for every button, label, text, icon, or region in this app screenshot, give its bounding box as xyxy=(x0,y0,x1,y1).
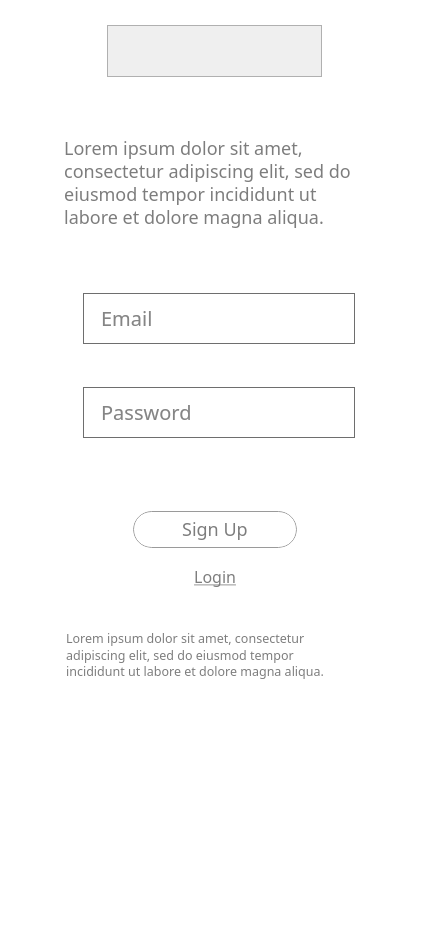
staticText: Sign Up xyxy=(182,517,248,542)
button[interactable]: Login xyxy=(190,562,240,592)
staticText: Email xyxy=(101,305,153,332)
staticText: Login xyxy=(194,566,236,588)
button[interactable]: Email xyxy=(83,293,355,344)
staticText: Lorem ipsum dolor sit amet, consectetur … xyxy=(64,136,359,229)
button[interactable]: Sign Up xyxy=(133,511,297,548)
staticText: Lorem ipsum dolor sit amet, consectetur … xyxy=(66,630,341,679)
button[interactable]: Password xyxy=(83,387,355,438)
staticText: Password xyxy=(101,399,192,426)
